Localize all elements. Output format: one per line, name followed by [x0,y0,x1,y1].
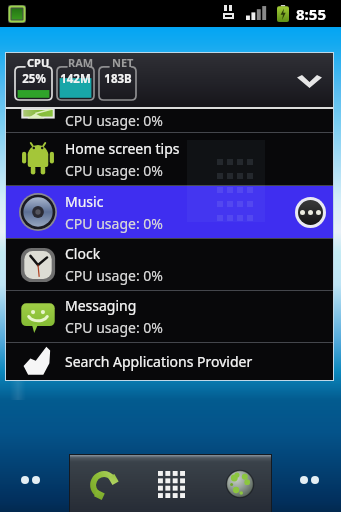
staticText: RAM [68,55,94,70]
staticText: CPU usage: 0% [65,111,163,130]
button[interactable]: Browser [206,455,271,512]
other: Collapse [297,75,322,89]
button[interactable]: All apps [137,455,206,512]
button[interactable]: Clock [6,239,333,290]
staticText: Messaging [65,296,137,315]
staticText: 183B [104,71,132,87]
staticText: Music [65,192,104,211]
staticText: Search Applications Provider [65,352,253,371]
staticText: CPU usage: 0% [65,161,163,180]
staticText: Clock [65,244,101,263]
button[interactable]: More options [298,200,323,225]
staticText: 25% [22,71,46,87]
staticText: CPU [27,55,50,70]
staticText: CPU usage: 0% [65,318,163,337]
staticText: Home screen tips [65,139,180,158]
button[interactable]: Music [6,186,333,238]
button[interactable]: Search Applications Provider [6,343,333,380]
button[interactable]: Messaging [6,291,333,342]
staticText: NET [112,55,134,70]
button[interactable]: CPU [6,53,333,107]
button[interactable]: Phone [70,455,137,512]
button[interactable]: Home screen tips [6,133,333,185]
staticText: CPU usage: 0% [65,266,163,285]
staticText: 142M [60,71,91,87]
staticText: CPU usage: 0% [65,214,163,233]
staticText: 8:55 [296,4,326,24]
button[interactable]: CPU usage: 0% [6,109,333,132]
